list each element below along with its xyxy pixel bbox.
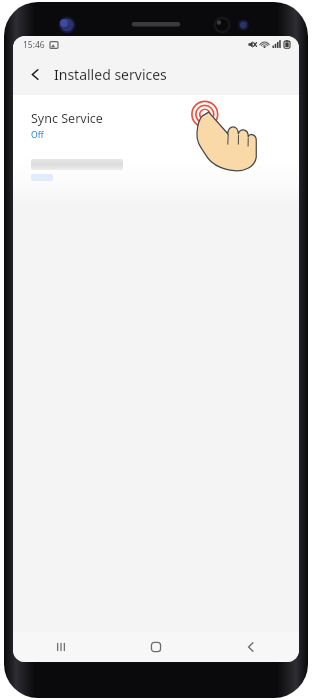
button[interactable]: Home <box>130 633 182 661</box>
button[interactable]: Back <box>225 633 277 661</box>
button[interactable] <box>13 155 299 201</box>
staticText: 15:46 <box>23 39 45 51</box>
button[interactable]: Sync Service <box>13 95 299 155</box>
staticText: Sync Service <box>31 110 103 127</box>
staticText: Installed services <box>54 65 167 84</box>
staticText: Off <box>31 129 44 141</box>
button[interactable]: Recents <box>35 633 87 661</box>
button[interactable]: Back <box>19 58 51 90</box>
